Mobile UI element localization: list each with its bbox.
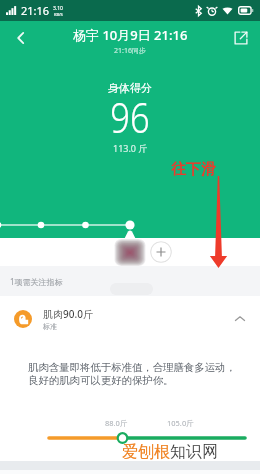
staticText: 3.10 xyxy=(53,5,63,12)
button[interactable]: Back xyxy=(4,21,38,55)
staticText: KB/S xyxy=(54,12,63,17)
staticText: 21:16 xyxy=(21,3,50,18)
staticText: 肌肉含量即将低于标准值，合理膳食多运动， xyxy=(28,361,236,374)
staticText: 杨宇 10月9日 21:16 xyxy=(73,26,188,44)
staticText: 身体得分 xyxy=(108,81,152,95)
button[interactable]: 肌肉90.0斤 xyxy=(0,296,260,342)
staticText: 知识网 xyxy=(170,442,218,462)
button[interactable]: Share xyxy=(224,21,258,55)
staticText: 良好的肌肉可以更好的保护你。 xyxy=(28,374,174,387)
staticText: 1项需关注指标 xyxy=(10,276,63,287)
staticText: 肌肉90.0斤 xyxy=(43,307,93,321)
staticText: 105.0斤 xyxy=(167,418,194,428)
staticText: 标准 xyxy=(43,322,57,331)
button[interactable]: User avatar xyxy=(113,238,147,266)
staticText: 88.0斤 xyxy=(105,418,128,428)
staticText: 爱刨根 xyxy=(122,442,170,462)
staticText: 113.0 斤 xyxy=(113,142,148,154)
button[interactable]: Add user xyxy=(150,241,172,263)
staticText: 96 xyxy=(110,88,150,145)
staticText: 21:16同步 xyxy=(114,46,146,56)
staticText: 往下滑 xyxy=(171,160,216,179)
